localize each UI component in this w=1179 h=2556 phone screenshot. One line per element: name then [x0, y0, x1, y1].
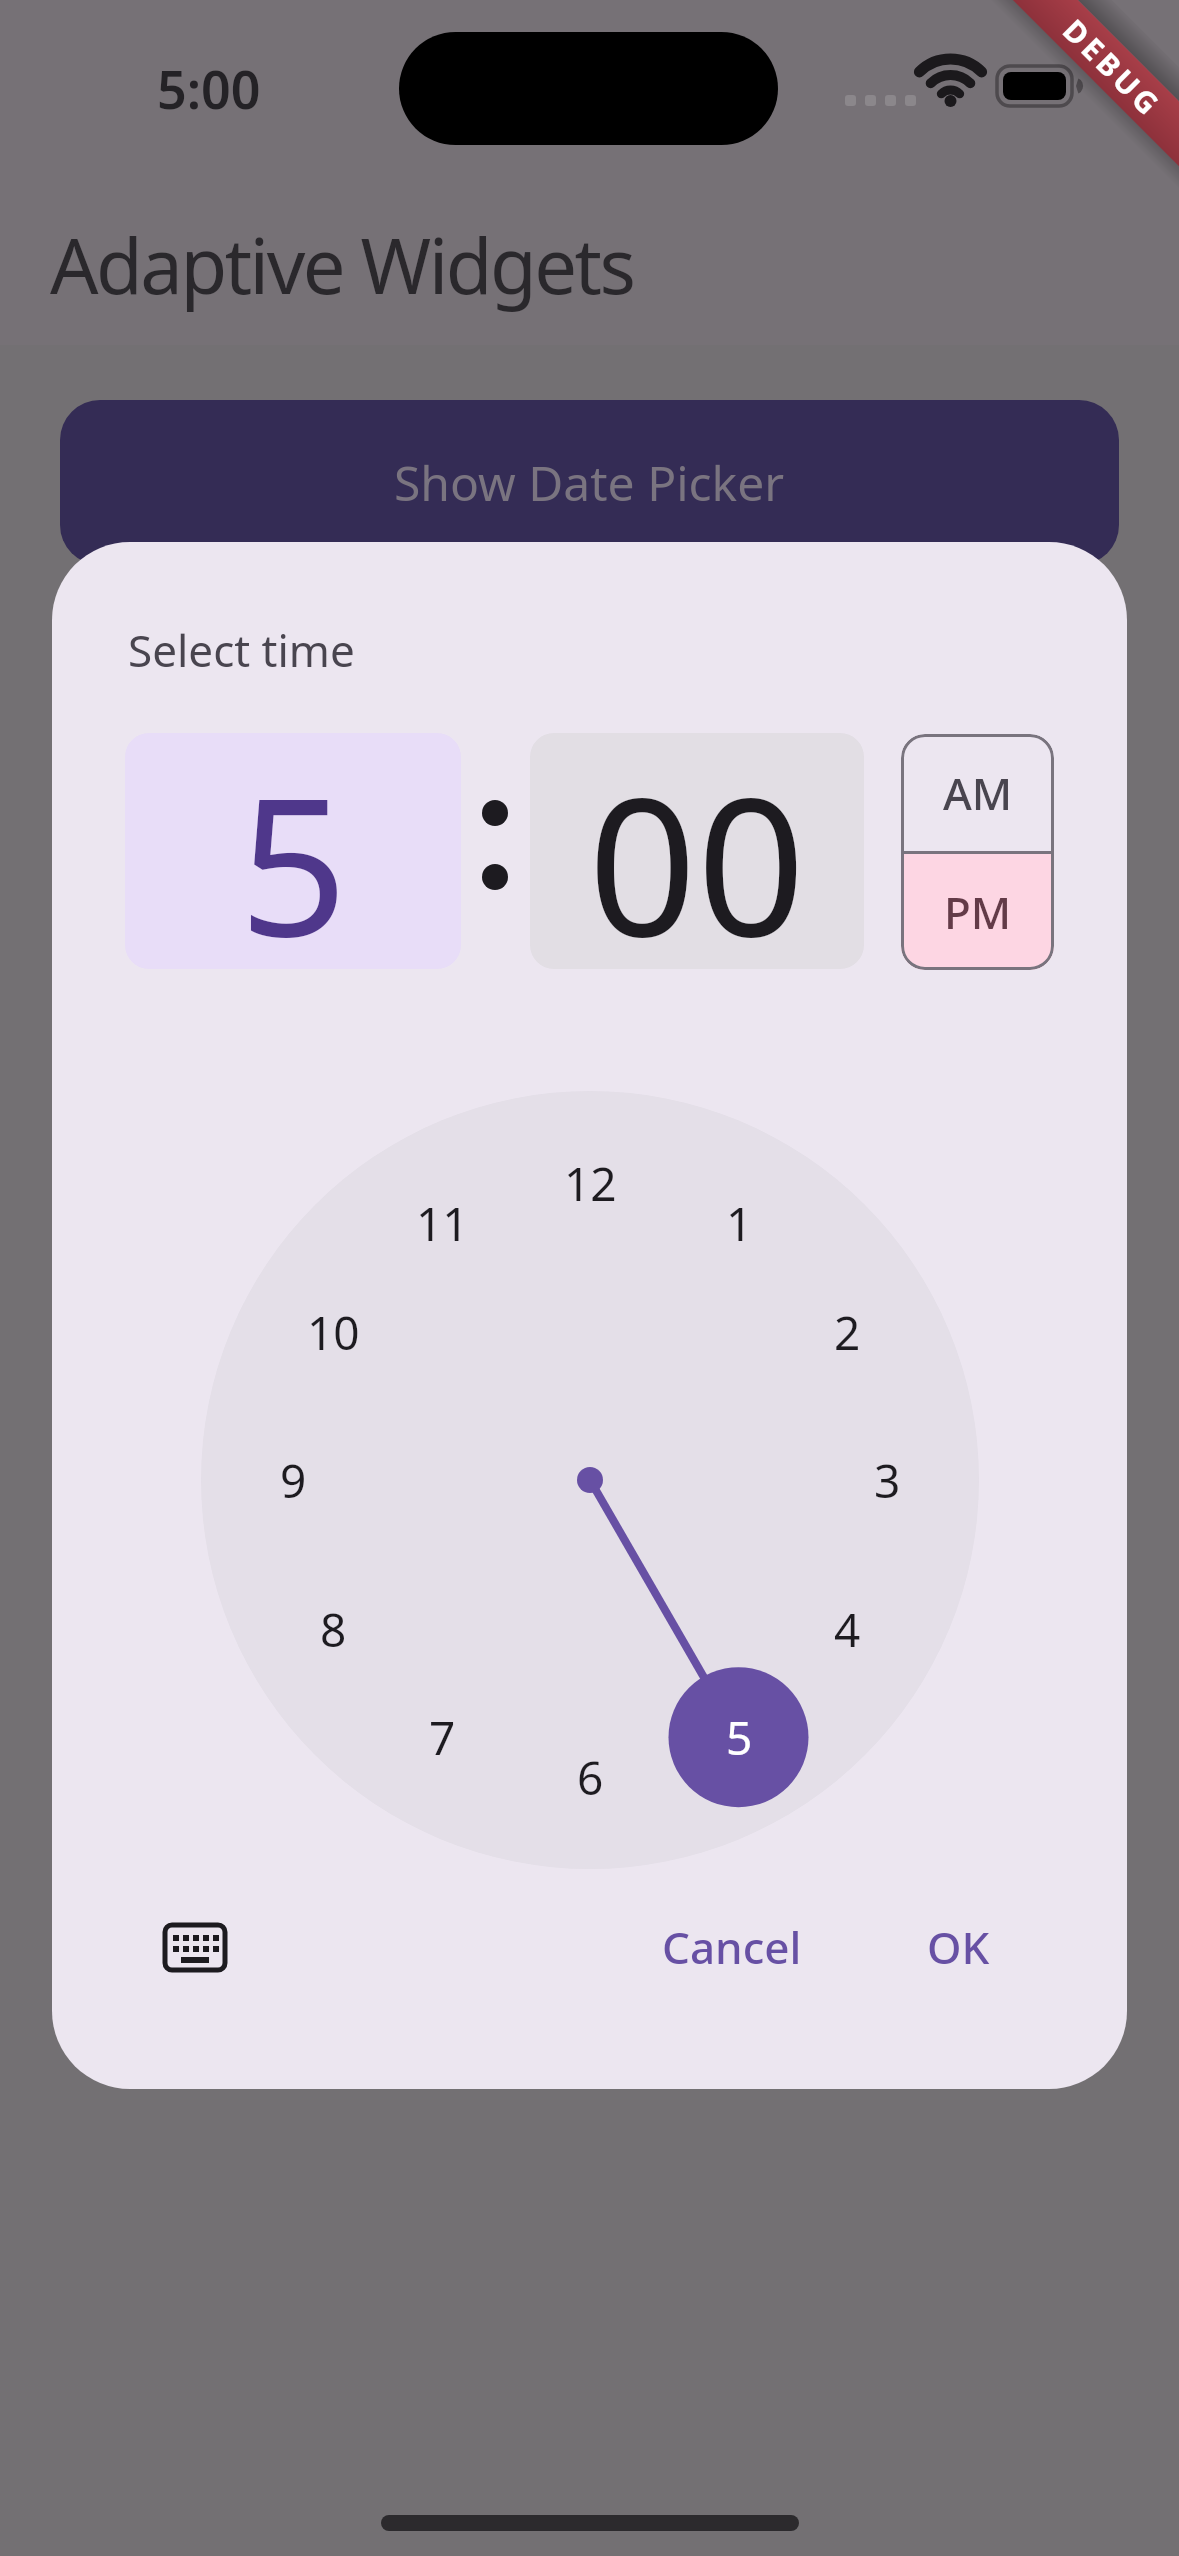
button[interactable]: 1 [699, 1183, 779, 1263]
button[interactable]: 2 [807, 1292, 887, 1372]
button[interactable]: 11 [402, 1183, 482, 1263]
button[interactable]: AM [901, 734, 1054, 851]
button[interactable]: 00 [530, 733, 864, 969]
staticText: 6 [577, 1746, 604, 1809]
staticText: DEBUG [1054, 10, 1171, 126]
staticText: Adaptive Widgets [50, 213, 634, 317]
staticText: PM [944, 882, 1012, 942]
staticText: 9 [280, 1449, 307, 1512]
button[interactable]: 7 [402, 1697, 482, 1777]
staticText: 5 [239, 733, 348, 969]
button[interactable]: OK [868, 1897, 1048, 1997]
staticText: 11 [416, 1192, 469, 1255]
staticText: OK [927, 1917, 990, 1977]
button[interactable]: 8 [293, 1589, 373, 1669]
staticText: 8 [320, 1598, 347, 1661]
button[interactable]: PM [901, 854, 1054, 970]
staticText: 7 [429, 1706, 456, 1769]
staticText: 12 [564, 1152, 617, 1215]
staticText: Cancel [662, 1917, 802, 1977]
staticText: 10 [307, 1301, 360, 1364]
button[interactable]: 3 [847, 1440, 927, 1520]
staticText: 4 [834, 1598, 861, 1661]
button[interactable]: 9 [253, 1440, 333, 1520]
staticText: 5 [726, 1706, 753, 1769]
button[interactable]: 12 [550, 1143, 630, 1223]
staticText: Select time [128, 620, 355, 680]
staticText: Show Date Picker [394, 450, 785, 515]
button[interactable]: 10 [293, 1292, 373, 1372]
button[interactable]: 4 [807, 1589, 887, 1669]
button[interactable]: Cancel [622, 1897, 842, 1997]
button[interactable]: 5 [125, 733, 461, 969]
button[interactable]: 5 [699, 1697, 779, 1777]
button[interactable]: Show Date Picker [60, 400, 1119, 565]
button[interactable]: 6 [550, 1737, 630, 1817]
staticText: 2 [834, 1301, 861, 1364]
staticText: 00 [588, 733, 806, 969]
button[interactable] [163, 1923, 227, 1972]
staticText: AM [943, 763, 1013, 823]
staticText: 5:00 [157, 53, 261, 124]
staticText: 3 [874, 1449, 901, 1512]
staticText: 1 [726, 1192, 753, 1255]
